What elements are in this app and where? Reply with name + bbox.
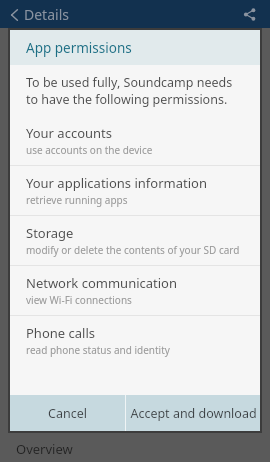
staticText: view Wi-Fi connections: [26, 293, 132, 307]
staticText: Details: [24, 5, 69, 24]
button[interactable]: Phone calls: [10, 316, 260, 365]
staticText: Your accounts: [26, 124, 112, 142]
staticText: Cancel: [48, 405, 87, 422]
staticText: modify or delete the contents of your SD…: [26, 243, 240, 257]
staticText: retrieve running apps: [26, 193, 128, 207]
button[interactable]: Back: [6, 2, 73, 27]
staticText: Network communication: [26, 274, 177, 292]
staticText: use accounts on the device: [26, 143, 153, 157]
button[interactable]: Your applications information: [10, 166, 260, 215]
staticText: To be used fully, Soundcamp needs to hav…: [26, 74, 246, 108]
button[interactable]: Accept and download: [126, 395, 260, 431]
staticText: Accept and download: [130, 405, 257, 422]
staticText: Storage: [26, 224, 74, 242]
staticText: read phone status and identity: [26, 343, 170, 357]
button[interactable]: Network communication: [10, 266, 260, 315]
staticText: Your applications information: [26, 174, 207, 192]
button[interactable]: Share: [236, 1, 262, 27]
staticText: App permissions: [26, 39, 132, 57]
button[interactable]: Your accounts: [10, 116, 260, 165]
button[interactable]: Storage: [10, 216, 260, 265]
button[interactable]: Cancel: [10, 395, 125, 431]
staticText: Phone calls: [26, 324, 95, 342]
staticText: Overview: [16, 440, 73, 458]
